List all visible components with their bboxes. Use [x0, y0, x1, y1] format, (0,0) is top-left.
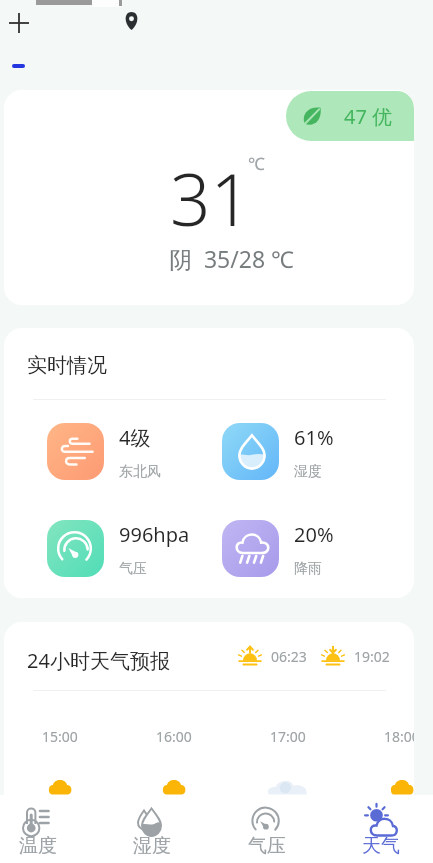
staticText: 4级	[119, 424, 151, 451]
staticText: 18:00	[384, 727, 414, 746]
button[interactable]: 湿度	[116, 795, 188, 863]
button[interactable]: 996hpa	[47, 520, 209, 577]
staticText: ℃	[248, 152, 265, 175]
staticText: 东北风	[119, 463, 161, 481]
button[interactable]: Add city	[5, 9, 32, 36]
staticText: 20%	[294, 521, 334, 548]
staticText: 996hpa	[119, 521, 190, 548]
staticText: 降雨	[294, 560, 322, 578]
button[interactable]: 20%	[222, 520, 384, 577]
staticText: 湿度	[133, 834, 171, 858]
staticText: 17:00	[270, 727, 306, 746]
button[interactable]: 19:02	[320, 644, 390, 668]
button[interactable]: 61%	[222, 423, 384, 480]
staticText: 实时情况	[27, 353, 107, 378]
staticText: 温度	[19, 834, 57, 858]
staticText: 湿度	[294, 463, 322, 481]
button[interactable]: Location	[122, 12, 140, 30]
staticText: 气压	[248, 834, 286, 858]
button[interactable]: 气压	[231, 795, 303, 863]
staticText: 19:02	[354, 647, 390, 666]
button[interactable]: 4级	[47, 423, 209, 480]
staticText: 61%	[294, 424, 334, 451]
staticText: 天气	[362, 834, 400, 858]
button[interactable]: 天气	[345, 795, 417, 863]
button[interactable]: 47 优	[286, 91, 414, 141]
button[interactable]: 温度	[2, 795, 74, 863]
staticText: 16:00	[156, 727, 192, 746]
button[interactable]: 06:23	[237, 644, 307, 668]
staticText: 31	[170, 150, 252, 247]
staticText: 47 优	[344, 103, 393, 130]
staticText: 15:00	[42, 727, 78, 746]
staticText: 06:23	[271, 647, 307, 666]
staticText: 24小时天气预报	[27, 647, 170, 674]
staticText: 气压	[119, 560, 147, 578]
staticText: 阴 35/28 ℃	[169, 243, 295, 274]
